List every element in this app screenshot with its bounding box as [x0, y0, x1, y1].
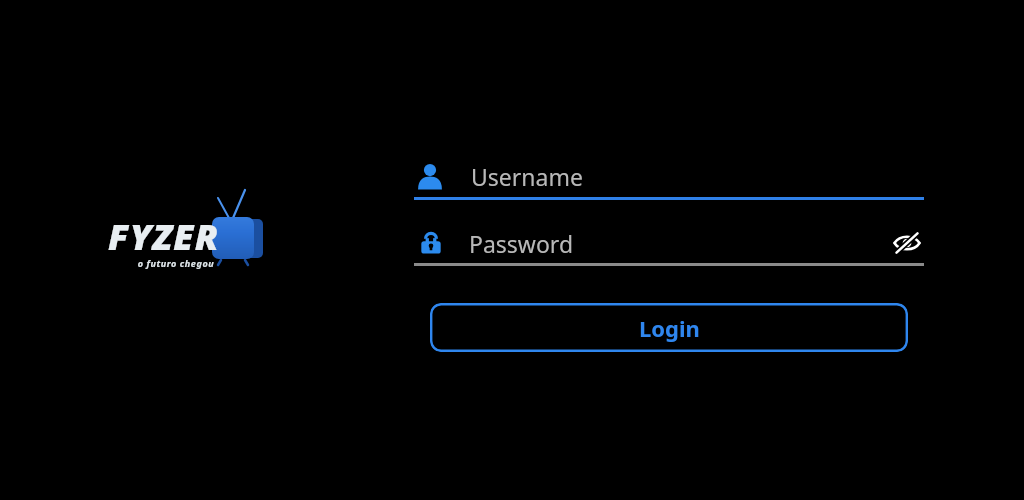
button[interactable]: Show password — [890, 226, 924, 260]
button[interactable]: Username — [414, 158, 924, 194]
staticText: Password — [469, 228, 574, 259]
staticText: o futuro chegou — [100, 257, 252, 269]
button[interactable]: Login — [430, 303, 908, 352]
button[interactable]: Password — [469, 228, 890, 259]
staticText: Login — [639, 313, 700, 343]
staticText: FYZER — [108, 212, 220, 261]
staticText: Username — [471, 161, 583, 192]
